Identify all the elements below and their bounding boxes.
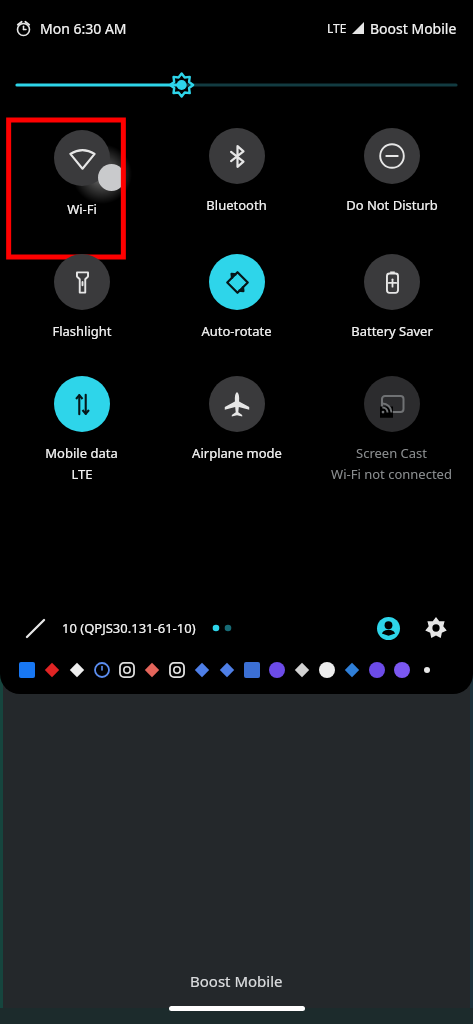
staticText: Wi-Fi not connected (331, 465, 452, 483)
button[interactable]: Settings (419, 611, 453, 645)
staticText: LTE (327, 20, 347, 36)
button[interactable]: Flashlight (4, 244, 159, 340)
button[interactable]: Bluetooth (159, 118, 314, 214)
staticText: Do Not Disturb (346, 196, 438, 214)
button[interactable]: Edit (20, 613, 50, 643)
button[interactable]: Mobile data (4, 366, 159, 483)
button[interactable]: Wi-Fi (4, 118, 159, 218)
staticText: Mon 6:30 AM (40, 19, 127, 38)
staticText: 10 (QPJS30.131-61-10) (62, 619, 196, 637)
staticText: Wi-Fi (67, 200, 97, 218)
staticText: LTE (71, 465, 93, 483)
staticText: Auto-rotate (201, 322, 272, 340)
button[interactable]: Do Not Disturb (314, 118, 469, 214)
button[interactable]: Brightness (17, 72, 456, 98)
button[interactable]: User (371, 611, 405, 645)
staticText: Airplane mode (192, 444, 282, 462)
staticText: Screen Cast (356, 444, 427, 462)
staticText: Boost Mobile (190, 971, 283, 991)
staticText: Bluetooth (206, 196, 267, 214)
staticText: Battery Saver (351, 322, 433, 340)
staticText: Flashlight (52, 322, 112, 340)
button[interactable]: Battery Saver (314, 244, 469, 340)
button[interactable]: Screen Cast (314, 366, 469, 483)
button[interactable]: Airplane mode (159, 366, 314, 462)
staticText: Mobile data (45, 444, 118, 462)
button[interactable]: Auto-rotate (159, 244, 314, 340)
staticText: Boost Mobile (370, 19, 457, 38)
